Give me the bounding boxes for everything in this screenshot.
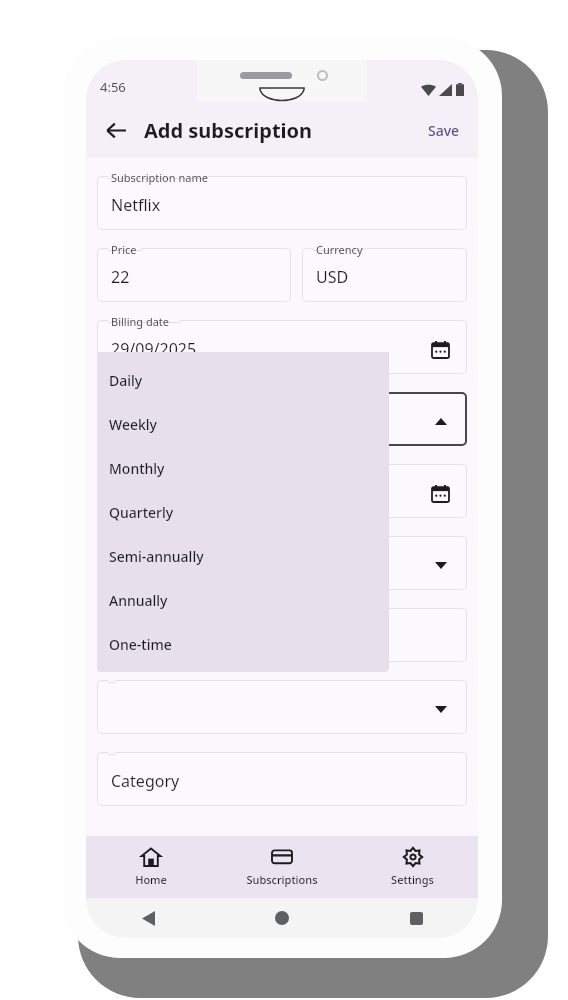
button[interactable]: Save (420, 115, 468, 146)
button[interactable]: Collapse (427, 407, 455, 435)
staticText: Currency (316, 242, 363, 257)
button[interactable]: Home (264, 900, 300, 936)
staticText: Quarterly (109, 503, 174, 522)
staticText: 22 (111, 266, 130, 288)
staticText: Weekly (109, 415, 157, 434)
staticText: Subscriptions (246, 872, 318, 887)
staticText: Billing date (111, 314, 170, 329)
button[interactable]: Recents (398, 900, 434, 936)
button[interactable]: One-time (97, 622, 389, 666)
staticText: Home (135, 872, 167, 887)
button[interactable]: Daily (97, 358, 389, 402)
staticText: Daily (109, 371, 143, 390)
staticText: 29/09/2025 (111, 338, 197, 360)
button[interactable]: Home (86, 836, 216, 898)
button[interactable]: Billing cycle (97, 392, 467, 446)
staticText: Save (428, 121, 460, 140)
button[interactable]: Quarterly (97, 490, 389, 534)
staticText: Monthly (111, 410, 174, 432)
staticText: Category (111, 770, 180, 792)
staticText: Settings (391, 872, 434, 887)
button[interactable]: Settings (347, 836, 478, 898)
staticText: USD (316, 266, 349, 288)
button[interactable]: Annually (97, 578, 389, 622)
button[interactable]: Semi-annually (97, 534, 389, 578)
staticText: Semi-annually (109, 547, 204, 566)
button[interactable]: Pick date (425, 478, 455, 508)
button[interactable]: Monthly (97, 446, 389, 490)
staticText: One-time (109, 635, 172, 654)
button[interactable]: Weekly (97, 402, 389, 446)
staticText: Billing cycle (111, 386, 172, 401)
staticText: Netflix (111, 194, 161, 216)
button[interactable]: Pick date (425, 334, 455, 364)
button[interactable]: Subscriptions (216, 836, 347, 898)
button[interactable]: Expand (427, 551, 455, 579)
staticText: Price (111, 242, 137, 257)
staticText: 4:56 (100, 78, 126, 96)
staticText: Annually (109, 591, 168, 610)
button[interactable]: Back (96, 110, 136, 150)
staticText: Monthly (109, 459, 165, 478)
button[interactable]: Expand (427, 695, 455, 723)
staticText: Add subscription (144, 117, 313, 144)
button[interactable]: Back (130, 900, 166, 936)
staticText: Subscription name (111, 170, 208, 185)
